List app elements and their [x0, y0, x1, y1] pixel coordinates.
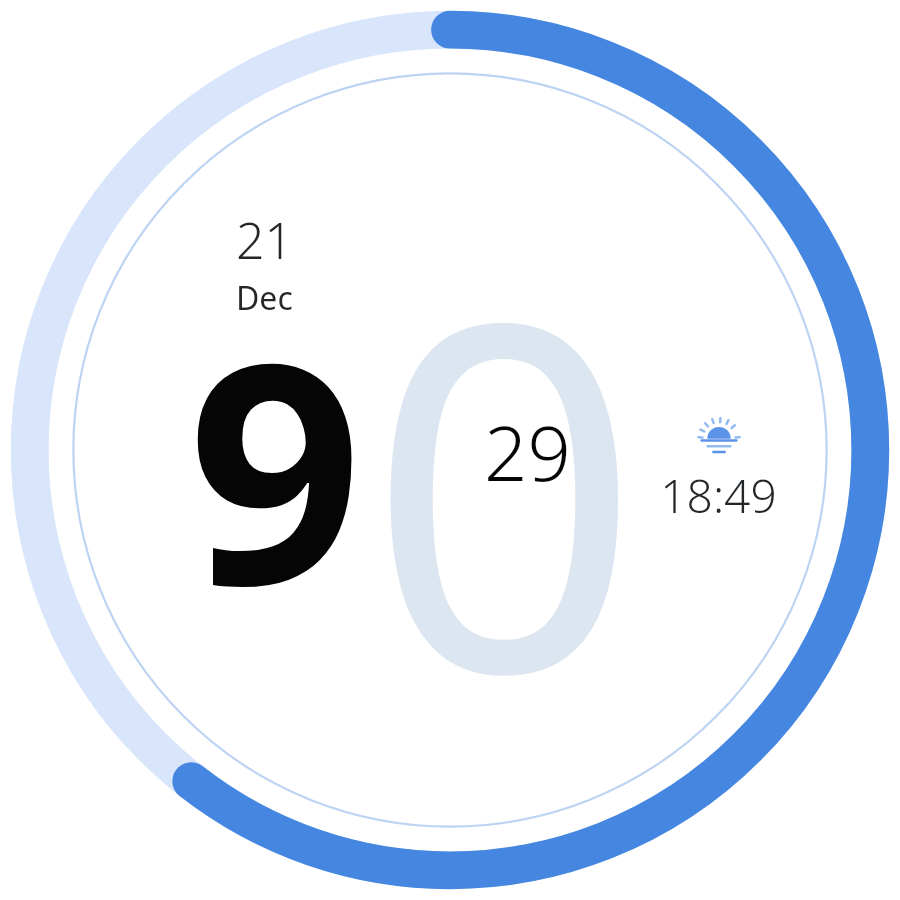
staticText: Dec	[236, 276, 293, 320]
button[interactable]: Sunset 18:49	[660, 414, 777, 527]
staticText: 0	[367, 158, 642, 812]
button[interactable]: 21	[236, 206, 294, 320]
staticText: 21	[236, 206, 294, 274]
staticText: 29	[484, 400, 571, 504]
staticText: 9	[188, 258, 363, 673]
staticText: 18:49	[660, 464, 777, 527]
